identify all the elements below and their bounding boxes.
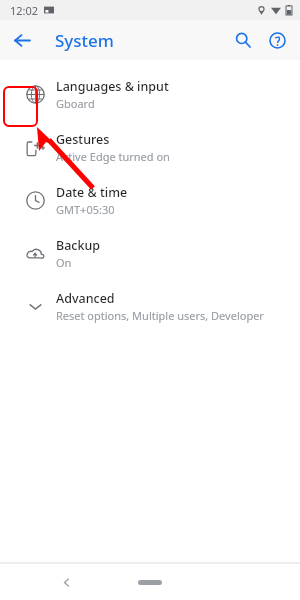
staticText: Advanced — [56, 290, 115, 307]
staticText: Languages & input — [56, 78, 169, 95]
staticText: Active Edge turned on — [56, 149, 170, 164]
button[interactable]: Back — [4, 22, 40, 58]
button[interactable]: Gestures — [0, 121, 300, 174]
button[interactable]: Search — [226, 23, 260, 57]
button[interactable]: Languages & input — [0, 68, 300, 121]
staticText: System — [55, 29, 114, 52]
staticText: On — [56, 255, 72, 270]
button[interactable]: Backup — [0, 227, 300, 280]
button[interactable]: Advanced — [0, 280, 300, 333]
staticText: Backup — [56, 237, 101, 254]
button[interactable]: Back — [51, 567, 81, 597]
staticText: Reset options, Multiple users, Developer… — [56, 308, 290, 323]
button[interactable]: Date & time — [0, 174, 300, 227]
staticText: 12:02 — [10, 3, 39, 18]
staticText: Gboard — [56, 96, 95, 111]
staticText: Gestures — [56, 131, 110, 148]
staticText: Date & time — [56, 184, 128, 201]
button[interactable]: Home — [120, 567, 180, 597]
button[interactable]: Help — [260, 23, 294, 57]
staticText: GMT+05:30 — [56, 202, 115, 217]
